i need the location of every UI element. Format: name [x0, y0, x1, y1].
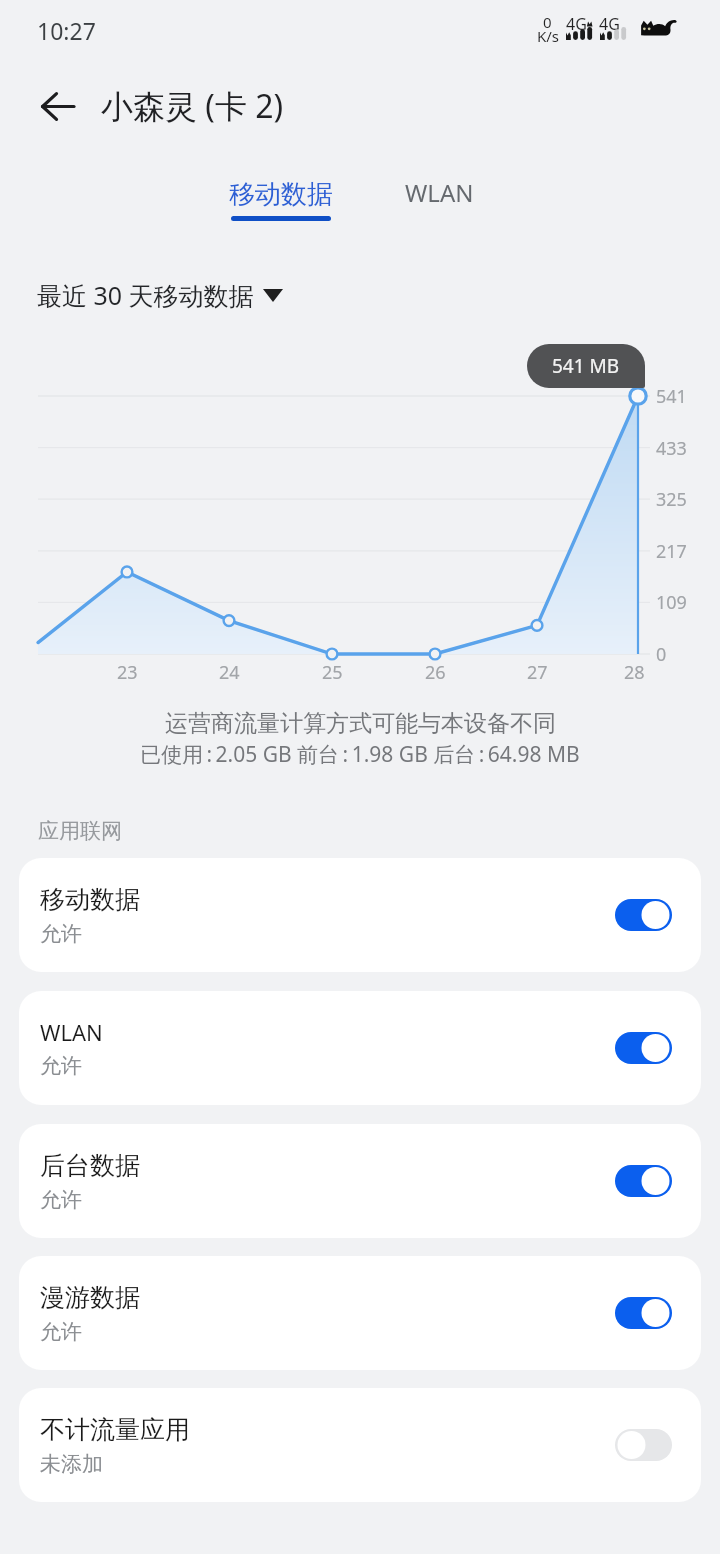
- staticText: 运营商流量计算方式可能与本设备不同: [165, 709, 556, 738]
- staticText: 移动数据: [40, 884, 140, 915]
- button[interactable]: WLAN: [389, 164, 489, 220]
- staticText: 0: [543, 12, 552, 32]
- button[interactable]: Toggle on: [615, 1297, 672, 1329]
- button[interactable]: 后台数据: [19, 1124, 701, 1238]
- staticText: 23: [117, 660, 138, 685]
- staticText: 允许: [40, 1053, 82, 1079]
- staticText: WLAN: [40, 1017, 103, 1047]
- staticText: K/s: [537, 26, 560, 46]
- staticText: WLAN: [405, 176, 474, 209]
- staticText: 28: [624, 660, 645, 685]
- staticText: 漫游数据: [40, 1282, 140, 1313]
- staticText: 24: [219, 660, 240, 685]
- staticText: 541 MB: [552, 353, 620, 379]
- button[interactable]: Back: [21, 78, 93, 134]
- staticText: 移动数据: [229, 178, 333, 211]
- staticText: 不计流量应用: [40, 1414, 190, 1445]
- staticText: 217: [656, 539, 687, 564]
- button[interactable]: 移动数据: [19, 858, 701, 972]
- staticText: 允许: [40, 921, 82, 947]
- staticText: 0: [656, 642, 667, 667]
- staticText: 4G: [599, 13, 620, 35]
- button[interactable]: 移动数据: [221, 166, 341, 222]
- staticText: 27: [527, 660, 548, 685]
- staticText: 433: [656, 436, 687, 461]
- staticText: 允许: [40, 1319, 82, 1345]
- staticText: 26: [425, 660, 446, 685]
- staticText: 已使用 : 2.05 GB 前台 : 1.98 GB 后台 : 64.98 MB: [140, 740, 580, 769]
- staticText: 109: [656, 590, 687, 615]
- button[interactable]: WLAN: [19, 991, 701, 1105]
- button[interactable]: 漫游数据: [19, 1256, 701, 1370]
- button[interactable]: Toggle off: [615, 1429, 672, 1461]
- button[interactable]: 最近 30 天移动数据: [37, 275, 283, 315]
- staticText: 应用联网: [38, 818, 122, 844]
- staticText: 325: [656, 487, 687, 512]
- staticText: 541: [656, 384, 687, 409]
- staticText: 10:27: [37, 15, 96, 46]
- button[interactable]: Toggle on: [615, 1032, 672, 1064]
- button[interactable]: 不计流量应用: [19, 1388, 701, 1502]
- staticText: 后台数据: [40, 1150, 140, 1181]
- staticText: 未添加: [40, 1451, 103, 1477]
- staticText: 小森灵 (卡 2): [101, 84, 284, 128]
- staticText: 最近 30 天移动数据: [37, 278, 254, 312]
- button[interactable]: Toggle on: [615, 899, 672, 931]
- staticText: 25: [322, 660, 343, 685]
- staticText: 4G: [566, 13, 587, 35]
- button[interactable]: Toggle on: [615, 1165, 672, 1197]
- staticText: 允许: [40, 1187, 82, 1213]
